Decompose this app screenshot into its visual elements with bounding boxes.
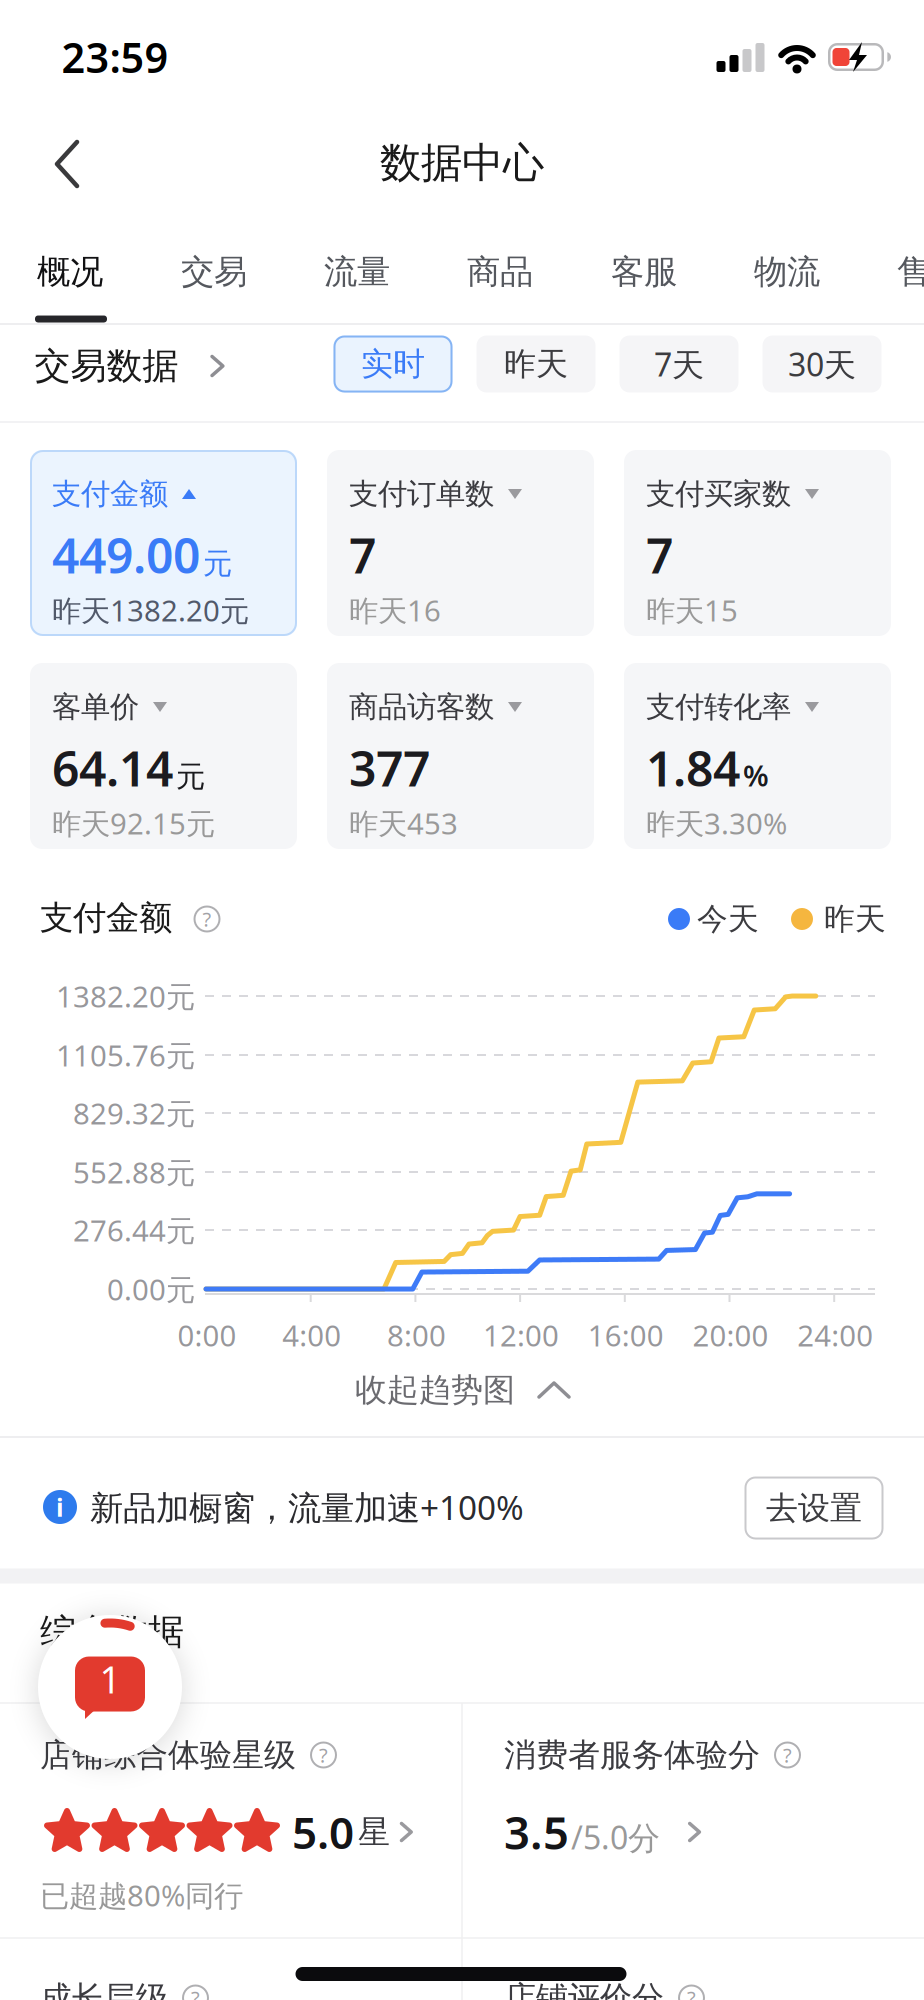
staticText: i [56, 1490, 64, 1524]
button[interactable]: 客单价 [30, 663, 297, 849]
button[interactable]: 去设置 [744, 1476, 883, 1539]
staticText: 交易 [181, 251, 247, 292]
staticText: 支付订单数 [349, 476, 494, 512]
staticText: 客服 [611, 251, 677, 292]
staticText: 商品 [467, 251, 533, 292]
staticText: 已超越80%同行 [40, 1875, 243, 1914]
staticText: 1.84 [646, 736, 740, 800]
staticText: 消费者服务体验分 [504, 1735, 760, 1775]
staticText: ? [319, 1742, 328, 1768]
staticText: 昨天453 [349, 803, 458, 842]
button[interactable]: 支付转化率 [624, 663, 891, 849]
staticText: 元 [176, 759, 205, 795]
button[interactable]: 支付订单数 [327, 450, 594, 636]
staticText: 成长层级 [40, 1978, 168, 2000]
staticText: 昨天16 [349, 590, 441, 629]
staticText: 3.5 [504, 1802, 569, 1862]
button[interactable]: 客服 [603, 237, 685, 306]
staticText: 5.0 [292, 1803, 354, 1861]
staticText: 449.00 [52, 523, 200, 587]
staticText: /5.0分 [571, 1816, 660, 1858]
button[interactable]: 流量 [316, 237, 398, 306]
staticText: 店铺综合体验星级 [40, 1735, 296, 1775]
button[interactable]: 7天 [619, 335, 738, 392]
staticText: 1105.76元 [56, 1035, 195, 1074]
staticText: 昨天 [824, 900, 886, 938]
staticText: 昨天15 [646, 590, 738, 629]
button[interactable]: 昨天 [476, 335, 595, 392]
staticText: 综合数据 [40, 1610, 184, 1654]
staticText: ? [687, 1985, 696, 2000]
staticText: 昨天92.15元 [52, 803, 215, 842]
staticText: 今天 [697, 900, 759, 938]
staticText: 支付金额 [40, 897, 172, 938]
staticText: 8:00 [387, 1315, 446, 1354]
staticText: 售后 [897, 251, 924, 292]
button[interactable]: 消费者服务体验分 [504, 1703, 924, 1923]
staticText: 276.44元 [73, 1210, 195, 1249]
staticText: 概况 [37, 251, 103, 292]
staticText: 收起趋势图 [355, 1370, 515, 1410]
button[interactable]: 收起趋势图 [343, 1358, 581, 1422]
button[interactable]: 店铺综合体验星级 [40, 1703, 470, 1923]
staticText: 支付金额 [52, 476, 168, 512]
staticText: 829.32元 [73, 1093, 195, 1132]
staticText: 23:59 [61, 30, 168, 84]
staticText: 星 [358, 1812, 390, 1852]
button[interactable]: 实时 [333, 335, 452, 392]
staticText: 1382.20元 [56, 976, 195, 1015]
staticText: 店铺评价分 [504, 1978, 664, 2000]
button[interactable]: 30天 [762, 335, 881, 392]
staticText: 1 [99, 1654, 120, 1704]
button[interactable]: 概况 [29, 237, 111, 306]
staticText: 交易数据 [34, 344, 178, 388]
staticText: 昨天3.30% [646, 803, 787, 842]
staticText: 30天 [788, 343, 856, 385]
staticText: 7天 [654, 343, 704, 385]
staticText: ? [783, 1742, 792, 1768]
button[interactable]: 消息 [38, 1615, 182, 1759]
button[interactable]: 商品 [459, 237, 541, 306]
staticText: 数据中心 [380, 138, 544, 188]
staticText: % [743, 756, 769, 795]
staticText: 24:00 [797, 1315, 873, 1354]
staticText: 377 [349, 736, 430, 800]
button[interactable]: 物流 [746, 237, 828, 306]
staticText: 昨天1382.20元 [52, 590, 249, 629]
staticText: ? [191, 1985, 200, 2000]
button[interactable]: 支付金额 [30, 450, 297, 636]
staticText: 12:00 [483, 1315, 559, 1354]
button[interactable]: 支付买家数 [624, 450, 891, 636]
staticText: ? [202, 906, 211, 932]
staticText: 客单价 [52, 689, 139, 725]
staticText: 支付转化率 [646, 689, 791, 725]
staticText: 64.14 [52, 736, 173, 800]
staticText: 4:00 [282, 1315, 341, 1354]
staticText: 物流 [754, 251, 820, 292]
button[interactable]: 交易 [173, 237, 255, 306]
staticText: 0:00 [177, 1315, 236, 1354]
button[interactable]: 交易数据 [34, 344, 225, 388]
button[interactable]: 售后 [889, 237, 924, 306]
staticText: 16:00 [588, 1315, 664, 1354]
staticText: 实时 [361, 344, 425, 384]
staticText: 552.88元 [73, 1152, 195, 1191]
staticText: 20:00 [692, 1315, 768, 1354]
staticText: 新品加橱窗，流量加速+100% [90, 1485, 524, 1529]
staticText: 昨天 [504, 344, 568, 384]
staticText: 商品访客数 [349, 689, 494, 725]
staticText: 去设置 [766, 1488, 862, 1528]
staticText: 7 [349, 523, 376, 587]
staticText: 0.00元 [107, 1269, 195, 1308]
staticText: 元 [203, 546, 232, 582]
staticText: 7 [646, 523, 673, 587]
button[interactable]: Back [41, 126, 95, 202]
staticText: 支付买家数 [646, 476, 791, 512]
staticText: 流量 [324, 251, 390, 292]
button[interactable]: 商品访客数 [327, 663, 594, 849]
